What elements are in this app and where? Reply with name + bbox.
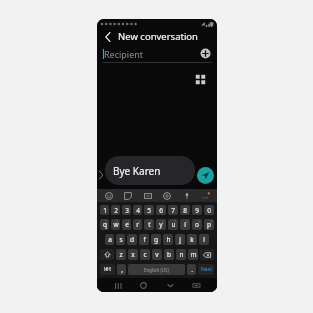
button[interactable]: Home [137, 279, 150, 292]
button[interactable]: q [100, 219, 109, 230]
staticText: x [131, 250, 135, 259]
staticText: o [195, 220, 199, 229]
staticText: u [171, 220, 176, 229]
staticText: 1 [105, 219, 108, 224]
button[interactable]: Hide keyboard [164, 279, 177, 292]
button[interactable]: 3 [122, 205, 131, 215]
staticText: f [143, 235, 146, 244]
button[interactable]: 0 [204, 205, 214, 215]
button[interactable]: !#1 [100, 264, 115, 275]
button[interactable]: 1 [100, 205, 109, 215]
button[interactable]: 6 [156, 205, 166, 215]
staticText: 2 [114, 206, 118, 215]
button[interactable]: z [116, 249, 126, 260]
staticText: 6 [159, 206, 163, 215]
button[interactable]: g [151, 234, 161, 245]
button[interactable]: v [152, 249, 162, 260]
staticText: 7 [174, 219, 177, 224]
button[interactable]: Keyboard layout [190, 279, 203, 292]
button[interactable]: Bye Karen [105, 156, 195, 185]
button[interactable]: y [156, 219, 166, 230]
staticText: 7 [171, 206, 175, 215]
staticText: 5 [147, 206, 151, 215]
button[interactable]: Back [101, 30, 115, 44]
staticText: English (US) [144, 267, 169, 273]
button[interactable]: Settings [161, 190, 172, 201]
button[interactable]: j [175, 234, 185, 245]
staticText: . [191, 265, 193, 274]
staticText: h [166, 235, 171, 244]
staticText: 6 [162, 219, 165, 224]
staticText: 5 [150, 219, 153, 224]
staticText: 1 [103, 206, 107, 215]
button[interactable]: n [176, 249, 186, 260]
staticText: g [154, 235, 158, 244]
button[interactable]: Next [198, 264, 214, 275]
button[interactable]: More options [200, 190, 211, 201]
button[interactable]: m [188, 249, 198, 260]
staticText: Next [201, 266, 212, 273]
staticText: 8 [183, 206, 187, 215]
button[interactable]: 9 [192, 205, 202, 215]
button[interactable]: r [133, 219, 142, 230]
button[interactable]: Shift [100, 249, 114, 260]
button[interactable]: Attachment panel [193, 72, 208, 87]
button[interactable]: h [163, 234, 173, 245]
staticText: 0 [207, 206, 211, 215]
button[interactable]: b [164, 249, 174, 260]
button[interactable]: c [140, 249, 150, 260]
button[interactable]: p [204, 219, 214, 230]
button[interactable]: f [139, 234, 149, 245]
button[interactable]: d [127, 234, 137, 245]
staticText: 0 [210, 219, 213, 224]
staticText: 9 [195, 206, 199, 215]
staticText: , [121, 265, 123, 274]
button[interactable]: k [187, 234, 197, 245]
staticText: w [113, 220, 119, 229]
button[interactable]: t [144, 219, 154, 230]
button[interactable]: l [199, 234, 209, 245]
button[interactable]: w [111, 219, 120, 230]
staticText: n [179, 250, 184, 259]
button[interactable]: English (US) [128, 264, 185, 275]
staticText: m [190, 250, 197, 259]
staticText: i [184, 220, 186, 229]
button[interactable]: 4 [133, 205, 142, 215]
staticText: p [207, 220, 211, 229]
staticText: 3 [127, 219, 130, 224]
button[interactable]: x [128, 249, 138, 260]
button[interactable]: Recents [111, 279, 124, 292]
button[interactable]: Add recipient [199, 47, 212, 60]
button[interactable]: o [192, 219, 202, 230]
staticText: r [136, 220, 139, 229]
button[interactable]: Voice input [181, 190, 192, 201]
staticText: q [103, 220, 107, 229]
button[interactable]: 8 [180, 205, 190, 215]
staticText: b [167, 250, 171, 259]
staticText: Bye Karen [113, 164, 161, 178]
staticText: New conversation [118, 30, 198, 43]
button[interactable]: Backspace [200, 249, 214, 260]
button[interactable]: Expand options [97, 165, 105, 185]
button[interactable]: Emoji [103, 190, 114, 201]
button[interactable]: s [116, 234, 125, 245]
button[interactable]: , [117, 264, 126, 275]
button[interactable]: u [168, 219, 178, 230]
button[interactable]: Stickers [122, 190, 133, 201]
staticText: j [179, 235, 181, 244]
staticText: 4 [136, 206, 140, 215]
button[interactable]: 5 [144, 205, 154, 215]
staticText: v [155, 250, 159, 259]
button[interactable]: a [105, 234, 114, 245]
staticText: d [130, 235, 134, 244]
staticText: z [119, 250, 123, 259]
staticText: a [108, 235, 112, 244]
button[interactable]: 7 [168, 205, 178, 215]
button[interactable]: Clipboard [142, 190, 153, 201]
button[interactable]: e [122, 219, 131, 230]
button[interactable]: . [187, 264, 196, 275]
staticText: t [148, 220, 151, 229]
button[interactable]: Send [197, 167, 214, 184]
button[interactable]: i [180, 219, 190, 230]
button[interactable]: 2 [111, 205, 120, 215]
